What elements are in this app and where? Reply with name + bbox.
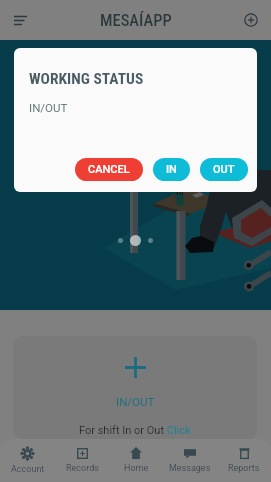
staticText: IN/OUT	[116, 395, 155, 408]
button[interactable]: OUT	[200, 158, 248, 181]
button[interactable]: Records	[55, 439, 109, 482]
staticText: OUT	[213, 163, 235, 176]
button[interactable]: IN	[153, 158, 190, 181]
button[interactable]: Account	[0, 439, 55, 482]
staticText: Reports	[228, 463, 260, 474]
staticText: IN/OUT	[29, 101, 68, 114]
button[interactable]: Messages	[163, 439, 217, 482]
staticText: Account	[11, 464, 45, 475]
staticText: MESAÍAPP	[100, 11, 172, 30]
staticText: Records	[66, 463, 99, 474]
button[interactable]: Add	[231, 0, 271, 40]
staticText: Home	[124, 463, 149, 474]
staticText: WORKING STATUS	[29, 70, 144, 88]
staticText: For shift In or Out Click	[79, 424, 191, 437]
button[interactable]: IN/OUT	[13, 336, 257, 439]
staticText: CANCEL	[88, 163, 130, 176]
button[interactable]: Reports	[217, 439, 271, 482]
staticText: Messages	[169, 463, 211, 474]
button[interactable]: Menu	[0, 0, 40, 40]
button[interactable]: CANCEL	[75, 158, 143, 181]
button[interactable]: Home	[109, 439, 163, 482]
staticText: IN	[166, 163, 177, 176]
